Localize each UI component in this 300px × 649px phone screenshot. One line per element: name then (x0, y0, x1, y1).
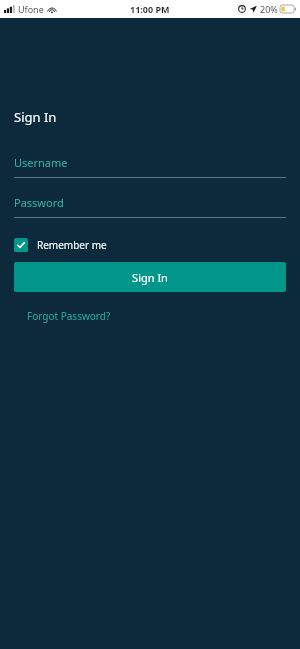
staticText: Sign In (132, 270, 168, 285)
button[interactable]: Sign In (14, 262, 286, 292)
staticText: Password (14, 195, 64, 210)
other: Remember me checkbox, checked (14, 238, 28, 252)
button[interactable]: Forgot Password? (27, 309, 111, 323)
button[interactable]: Remember me checkbox, checked (14, 236, 107, 254)
button[interactable]: Username (14, 155, 286, 178)
staticText: Remember me (37, 238, 107, 252)
staticText: Sign In (14, 108, 57, 126)
staticText: Username (14, 155, 68, 170)
staticText: Forgot Password? (27, 309, 111, 323)
staticText: 20% (260, 3, 278, 15)
button[interactable]: Password (14, 195, 286, 218)
staticText: Ufone (18, 3, 44, 15)
staticText: 11:00 PM (130, 3, 170, 15)
